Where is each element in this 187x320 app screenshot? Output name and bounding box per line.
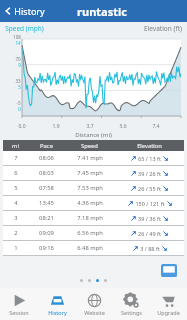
staticText: 7.4: [152, 123, 160, 130]
staticText: 6: [14, 169, 18, 177]
staticText: 26 / 49 ft: [138, 230, 161, 237]
staticText: 07:58: [39, 184, 54, 192]
staticText: 14: [15, 40, 21, 46]
staticText: 7.53 mph: [77, 184, 103, 192]
staticText: 4: [14, 199, 18, 207]
staticText: 09:09: [39, 229, 54, 237]
staticText: 7: [14, 154, 18, 162]
staticText: 2: [14, 229, 18, 237]
button[interactable]: Toggle chart view: [161, 264, 177, 280]
button[interactable]: 2: [3, 226, 184, 240]
staticText: Elevation (ft): [144, 24, 182, 33]
staticText: 08:06: [39, 154, 54, 162]
staticText: 7.41 mph: [77, 154, 103, 162]
button[interactable]: 3: [3, 211, 184, 225]
staticText: 0: [18, 106, 21, 112]
staticText: mi: [12, 142, 19, 150]
staticText: 08:21: [39, 214, 54, 222]
staticText: Speed (mph): [5, 24, 44, 33]
staticText: 5.6: [119, 123, 127, 130]
staticText: 7.45 mph: [77, 169, 103, 177]
staticText: 3.7: [86, 123, 94, 130]
staticText: 108: [13, 34, 21, 40]
button[interactable]: 1: [3, 241, 184, 255]
staticText: 3 / 88 ft: [140, 245, 160, 252]
staticText: Distance (mi): [75, 131, 112, 139]
staticText: 1.9: [52, 123, 60, 130]
staticText: 70: [15, 56, 21, 62]
staticText: 13:45: [39, 199, 54, 207]
button[interactable]: History: [38, 288, 76, 320]
staticText: Speed: [81, 142, 98, 150]
staticText: Session: [9, 309, 29, 316]
staticText: Pace: [40, 142, 53, 150]
staticText: Website: [84, 309, 105, 316]
staticText: 7.18 mph: [77, 214, 103, 222]
staticText: History: [14, 5, 45, 17]
button[interactable]: Website: [76, 288, 113, 320]
staticText: 9: [18, 62, 21, 68]
staticText: runtastic: [77, 4, 127, 19]
staticText: 39 / 26 ft: [138, 170, 161, 177]
staticText: 09:16: [39, 244, 54, 252]
staticText: 08:03: [39, 169, 54, 177]
staticText: Upgrade: [157, 309, 180, 316]
staticText: 5: [14, 184, 18, 192]
staticText: 65 / 13 ft: [138, 155, 161, 162]
button[interactable]: History: [3, 5, 45, 17]
button[interactable]: 5: [3, 181, 184, 195]
button[interactable]: Settings: [113, 288, 150, 320]
staticText: 6.56 mph: [77, 229, 103, 237]
button[interactable]: Session: [0, 288, 38, 320]
staticText: 33: [15, 78, 21, 84]
staticText: 0.0: [18, 123, 26, 130]
button[interactable]: 4: [3, 196, 184, 210]
staticText: Elevation: [137, 142, 162, 150]
staticText: -5: [16, 100, 21, 106]
staticText: 6.48 mph: [77, 244, 103, 252]
staticText: 4.36 mph: [77, 199, 103, 207]
staticText: 39 / 36 ft: [138, 215, 161, 222]
button[interactable]: 6: [3, 166, 184, 180]
button[interactable]: 7: [3, 151, 184, 165]
staticText: Settings: [121, 309, 142, 316]
staticText: 150 / 121 ft: [135, 200, 165, 207]
staticText: 3: [14, 214, 18, 222]
staticText: 1: [14, 244, 18, 252]
button[interactable]: Upgrade: [150, 288, 187, 320]
staticText: History: [48, 309, 67, 316]
staticText: 5: [18, 84, 21, 90]
staticText: 26 / 55 ft: [138, 185, 161, 192]
